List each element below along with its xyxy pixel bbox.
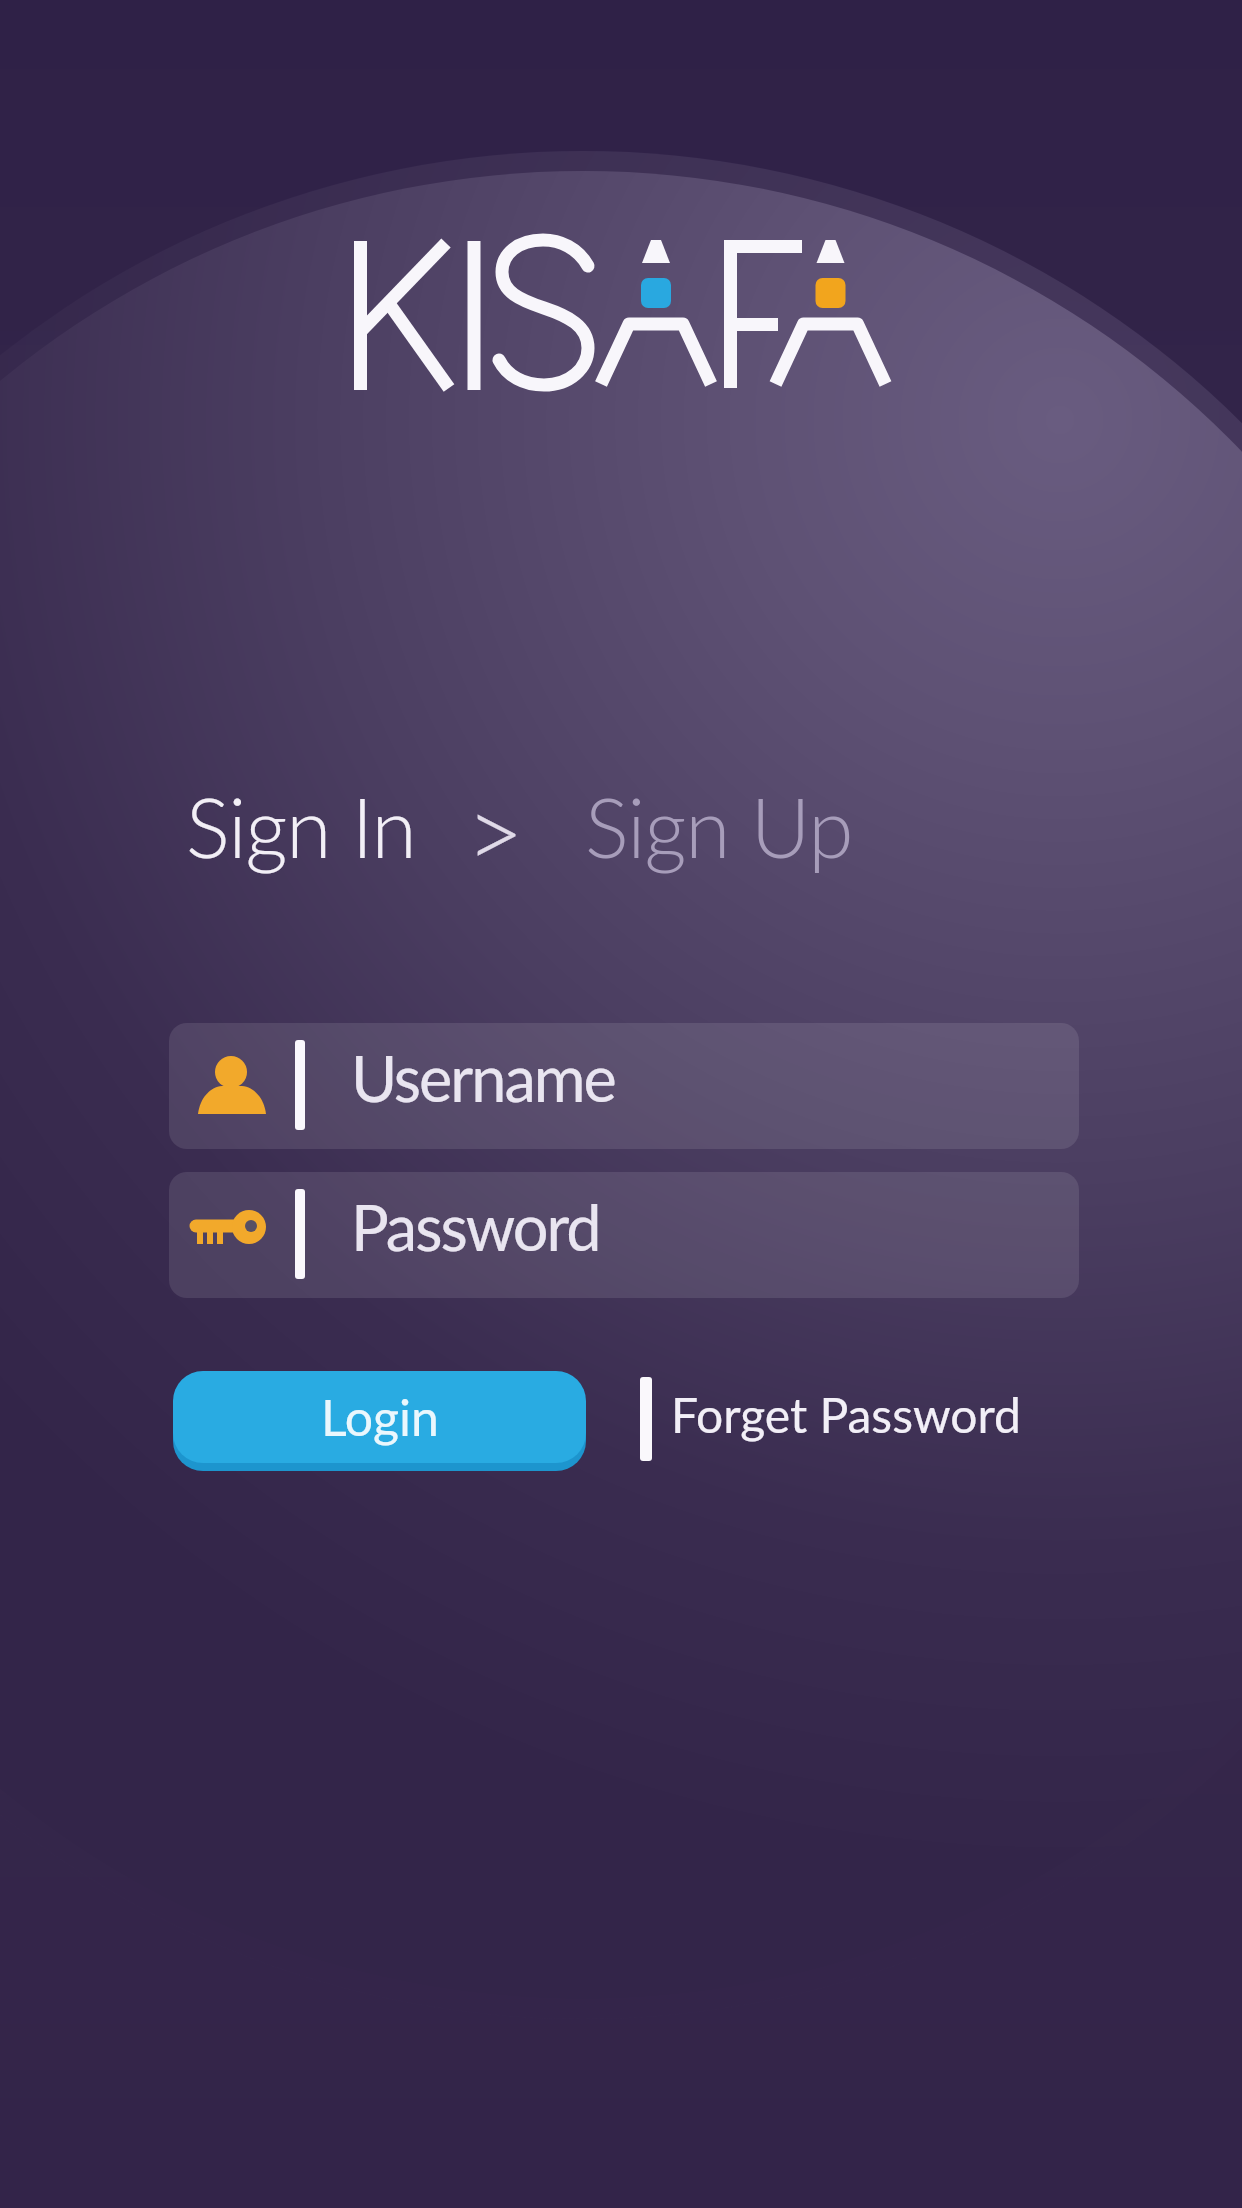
button[interactable]: Sign In (186, 777, 416, 875)
staticText: Password (351, 1189, 600, 1265)
staticText: Sign Up (585, 777, 853, 875)
staticText: Sign In (186, 777, 416, 875)
button[interactable]: Password (169, 1172, 1079, 1298)
button[interactable]: Forget Password (671, 1386, 1021, 1444)
staticText: Login (321, 1387, 439, 1447)
staticText: > (466, 770, 524, 890)
staticText: Forget Password (671, 1386, 1021, 1444)
button[interactable]: Username (169, 1023, 1079, 1149)
button[interactable]: Login (173, 1371, 586, 1463)
button[interactable]: Sign Up (585, 777, 853, 875)
staticText: Username (351, 1040, 615, 1116)
